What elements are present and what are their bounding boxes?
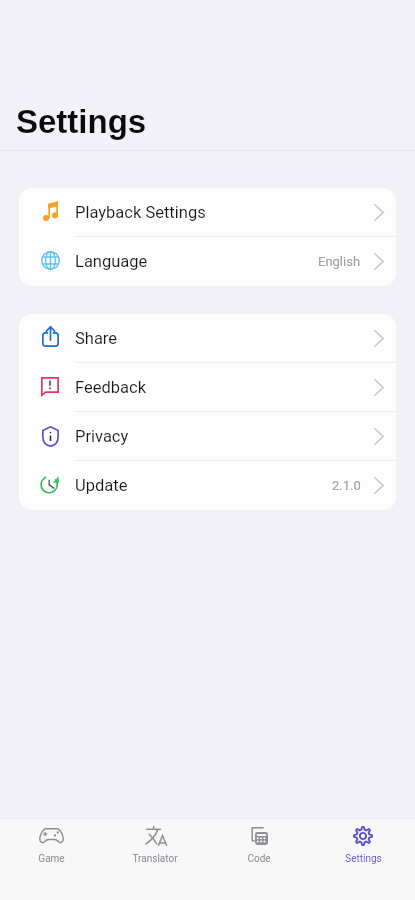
button[interactable]: Update bbox=[19, 461, 396, 510]
staticText: Code bbox=[247, 853, 271, 865]
staticText: Privacy bbox=[75, 427, 129, 446]
button[interactable]: Code bbox=[207, 819, 311, 865]
staticText: Playback Settings bbox=[75, 203, 206, 222]
staticText: Update bbox=[75, 476, 128, 495]
button[interactable]: Privacy bbox=[19, 412, 396, 461]
staticText: Settings bbox=[345, 853, 382, 865]
staticText: Game bbox=[38, 853, 65, 865]
button[interactable]: Game bbox=[0, 819, 103, 865]
staticText: English bbox=[318, 254, 361, 269]
other: Settings bbox=[353, 826, 373, 846]
button[interactable]: Translator bbox=[103, 819, 207, 865]
button[interactable]: Language bbox=[19, 237, 396, 286]
staticText: Translator bbox=[132, 853, 178, 865]
staticText: 2.1.0 bbox=[332, 478, 361, 493]
staticText: Feedback bbox=[75, 378, 146, 397]
other: Translator bbox=[144, 825, 167, 846]
staticText: Settings bbox=[16, 103, 147, 140]
other: Code bbox=[250, 827, 268, 845]
button[interactable]: Share bbox=[19, 314, 396, 363]
other: Game bbox=[39, 828, 64, 843]
button[interactable]: Feedback bbox=[19, 363, 396, 412]
button[interactable]: Playback Settings bbox=[19, 188, 396, 237]
button[interactable]: Settings bbox=[311, 819, 415, 865]
staticText: Share bbox=[75, 329, 118, 348]
staticText: Language bbox=[75, 252, 148, 271]
